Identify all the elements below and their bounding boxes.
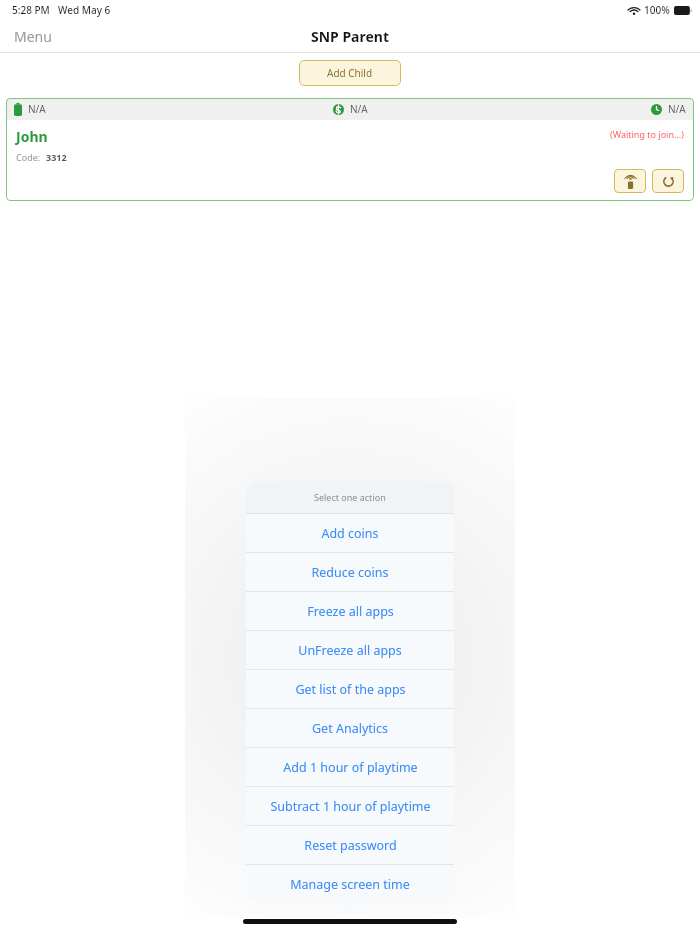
- staticText: (Waiting to join...): [610, 128, 684, 140]
- staticText: N/A: [28, 102, 46, 116]
- staticText: Freeze all apps: [307, 603, 394, 620]
- staticText: N/A: [668, 102, 686, 116]
- button[interactable]: N/A: [6, 98, 694, 201]
- staticText: N/A: [350, 102, 368, 116]
- staticText: 5:28 PM: [12, 3, 50, 17]
- button[interactable]: Add 1 hour of playtime: [246, 748, 454, 786]
- staticText: Get Analytics: [312, 720, 388, 737]
- button[interactable]: Freeze all apps: [246, 592, 454, 630]
- staticText: SNP Parent: [311, 27, 390, 46]
- staticText: Reduce coins: [311, 564, 389, 581]
- staticText: Reset password: [304, 837, 397, 854]
- staticText: Wed May 6: [58, 3, 111, 17]
- button[interactable]: Get Analytics: [246, 709, 454, 747]
- button[interactable]: Menu: [0, 21, 66, 52]
- button[interactable]: Add coins: [246, 514, 454, 552]
- staticText: Add coins: [321, 525, 379, 542]
- staticText: Select one action: [314, 491, 386, 503]
- button[interactable]: Manage screen time: [246, 865, 454, 903]
- staticText: Subtract 1 hour of playtime: [270, 798, 431, 815]
- staticText: UnFreeze all apps: [298, 642, 402, 659]
- staticText: Manage screen time: [290, 876, 410, 893]
- button[interactable]: Subtract 1 hour of playtime: [246, 787, 454, 825]
- staticText: Code:: [16, 151, 41, 163]
- staticText: 3312: [46, 151, 67, 163]
- staticText: Get list of the apps: [295, 681, 406, 698]
- staticText: 100%: [644, 3, 670, 17]
- button[interactable]: UnFreeze all apps: [246, 631, 454, 669]
- button[interactable]: Reduce coins: [246, 553, 454, 591]
- button[interactable]: Add Child: [299, 60, 401, 86]
- button[interactable]: Get list of the apps: [246, 670, 454, 708]
- button[interactable]: Refresh: [652, 169, 684, 193]
- staticText: Add Child: [327, 66, 373, 80]
- staticText: Add 1 hour of playtime: [283, 759, 418, 776]
- button[interactable]: Reset password: [246, 826, 454, 864]
- staticText: Menu: [14, 27, 52, 46]
- button[interactable]: Ping device: [614, 169, 646, 193]
- staticText: John: [16, 127, 48, 146]
